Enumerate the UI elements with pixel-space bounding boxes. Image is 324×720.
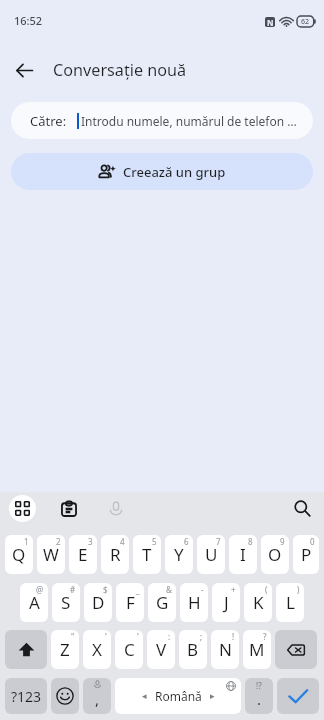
- staticText: W: [43, 543, 59, 566]
- button[interactable]: M: [243, 630, 271, 669]
- button[interactable]: R: [101, 535, 129, 574]
- staticText: ◂: [142, 691, 147, 701]
- staticText: Y: [174, 543, 184, 566]
- staticText: (: [265, 584, 268, 595]
- staticText: _: [136, 584, 140, 595]
- button[interactable]: O: [261, 535, 289, 574]
- staticText: +: [231, 584, 236, 595]
- button[interactable]: H: [180, 583, 208, 622]
- button[interactable]: ◂: [115, 678, 241, 714]
- button[interactable]: Backspace: [275, 630, 317, 669]
- button[interactable]: Creează un grup: [11, 153, 313, 190]
- staticText: ;: [200, 631, 203, 642]
- staticText: 9: [280, 536, 285, 547]
- staticText: 8: [248, 536, 253, 547]
- staticText: ): [297, 584, 300, 595]
- button[interactable]: G: [148, 583, 176, 622]
- staticText: X: [92, 638, 102, 661]
- button[interactable]: I: [229, 535, 257, 574]
- other: Emoji: [56, 687, 74, 705]
- staticText: M: [249, 638, 265, 661]
- staticText: R: [110, 543, 121, 566]
- staticText: ▸: [210, 691, 215, 701]
- button[interactable]: L: [276, 583, 304, 622]
- staticText: Z: [60, 638, 70, 661]
- staticText: 5: [152, 536, 157, 547]
- button[interactable]: F: [116, 583, 144, 622]
- staticText: B: [187, 638, 199, 661]
- button[interactable]: Y: [165, 535, 193, 574]
- button[interactable]: D: [84, 583, 112, 622]
- button[interactable]: ?123: [5, 678, 47, 714]
- button[interactable]: Q: [5, 535, 33, 574]
- button[interactable]: Enter: [277, 678, 319, 714]
- button[interactable]: ,: [83, 678, 111, 714]
- staticText: Română: [155, 688, 202, 704]
- staticText: Către:: [30, 112, 67, 130]
- button[interactable]: N: [211, 630, 239, 669]
- staticText: :: [168, 631, 171, 642]
- button[interactable]: C: [115, 630, 143, 669]
- button[interactable]: U: [197, 535, 225, 574]
- staticText: $: [103, 584, 108, 595]
- button[interactable]: X: [83, 630, 111, 669]
- staticText: V: [156, 638, 167, 661]
- staticText: #: [70, 584, 76, 595]
- staticText: 2: [56, 536, 61, 547]
- button[interactable]: W: [37, 535, 65, 574]
- staticText: ?: [263, 631, 267, 642]
- staticText: I: [240, 543, 246, 566]
- button[interactable]: J: [212, 583, 240, 622]
- staticText: &: [166, 584, 172, 595]
- staticText: Conversație nouă: [53, 59, 187, 81]
- staticText: 6: [184, 536, 189, 547]
- staticText: T: [142, 543, 152, 566]
- button[interactable]: Back: [4, 50, 44, 90]
- button[interactable]: K: [244, 583, 272, 622]
- staticText: J: [224, 591, 229, 614]
- button[interactable]: Către:: [11, 102, 313, 139]
- staticText: H: [188, 591, 201, 614]
- staticText: C: [124, 638, 135, 661]
- staticText: E: [78, 543, 88, 566]
- staticText: 4: [120, 536, 125, 547]
- staticText: Q: [12, 543, 26, 566]
- button[interactable]: B: [179, 630, 207, 669]
- staticText: S: [61, 591, 71, 614]
- button[interactable]: Clipboard: [55, 495, 82, 522]
- staticText: ": [71, 631, 75, 642]
- staticText: K: [253, 591, 264, 614]
- other: Enter: [286, 684, 310, 708]
- staticText: ,: [95, 689, 100, 709]
- button[interactable]: Shift: [5, 630, 47, 669]
- staticText: ?123: [11, 687, 42, 706]
- staticText: 16:52: [14, 13, 43, 28]
- staticText: !: [232, 631, 235, 642]
- staticText: F: [126, 591, 135, 614]
- button[interactable]: V: [147, 630, 175, 669]
- staticText: Introdu numele, numărul de telefon …: [81, 113, 297, 129]
- staticText: -: [201, 584, 204, 595]
- button[interactable]: Search: [289, 495, 316, 522]
- button[interactable]: A: [20, 583, 48, 622]
- button[interactable]: T: [133, 535, 161, 574]
- staticText: L: [286, 591, 295, 614]
- button[interactable]: Voice input: [102, 495, 129, 522]
- staticText: P: [301, 543, 312, 566]
- button[interactable]: S: [52, 583, 80, 622]
- staticText: 62: [301, 17, 310, 27]
- button[interactable]: .: [245, 678, 273, 714]
- staticText: 1: [24, 536, 29, 547]
- staticText: Creează un grup: [123, 163, 226, 181]
- staticText: A: [29, 591, 40, 614]
- staticText: N: [267, 17, 274, 27]
- button[interactable]: P: [293, 535, 319, 574]
- button[interactable]: E: [69, 535, 97, 574]
- button[interactable]: Toolbar: [9, 495, 36, 522]
- other: Backspace: [285, 639, 307, 661]
- button[interactable]: Z: [51, 630, 79, 669]
- button[interactable]: Emoji: [51, 678, 79, 714]
- staticText: @: [36, 584, 44, 595]
- staticText: 0: [310, 536, 315, 547]
- staticText: ': [105, 631, 107, 642]
